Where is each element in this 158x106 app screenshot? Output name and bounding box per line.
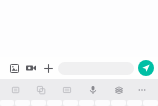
- button[interactable]: Text editing: [60, 83, 73, 96]
- button[interactable]: Send: [137, 59, 155, 77]
- button[interactable]: Attach image: [7, 61, 21, 75]
- button[interactable]: Clipboard: [9, 83, 22, 96]
- button[interactable]: More options: [41, 61, 55, 75]
- button[interactable]: Themes: [112, 83, 125, 96]
- button[interactable]: Take photo: [24, 61, 38, 75]
- button[interactable]: Translate: [34, 83, 47, 96]
- button[interactable]: More: [135, 83, 148, 96]
- button[interactable]: Voice input: [86, 83, 99, 96]
